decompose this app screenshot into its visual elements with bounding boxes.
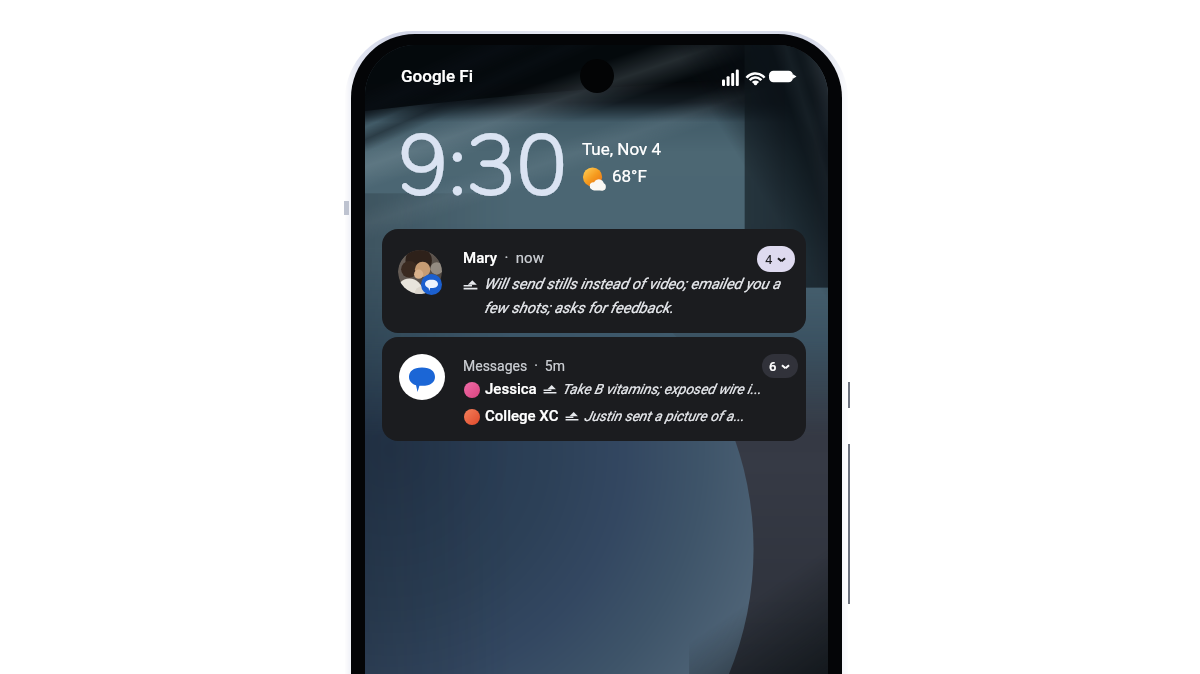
staticText: Google Fi [401,66,473,86]
button[interactable]: Messages · 5m [382,337,806,441]
staticText: Justin sent a picture of a... [584,408,745,424]
staticText: Jessica [485,380,537,398]
staticText: · now [497,249,544,267]
staticText: 9:30 [398,109,567,224]
staticText: 9:30 [398,109,567,224]
staticText: 6 [769,359,777,374]
staticText: College XC [485,407,559,425]
staticText: 68°F [612,166,647,186]
button[interactable]: Mary [382,229,806,333]
staticText: Tue, Nov 4 [582,139,662,159]
button[interactable]: Expand 4 notifications [757,246,795,272]
staticText: 4 [765,252,773,267]
staticText: Will send stills instead of video; email… [484,275,799,317]
staticText: Mary [463,249,497,267]
button[interactable]: Expand 6 notifications [762,354,798,378]
staticText: Messages · 5m [463,358,565,374]
staticText: Take B vitamins; exposed wire i... [562,381,762,397]
